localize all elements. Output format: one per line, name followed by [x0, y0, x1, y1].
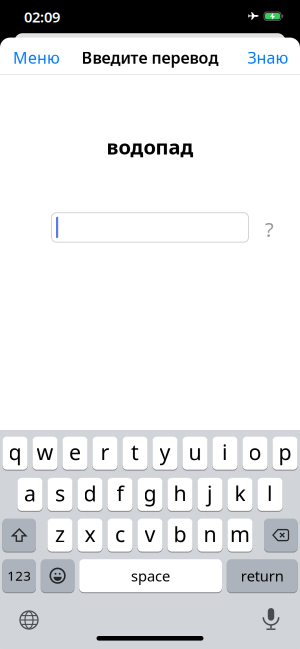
staticText: return: [241, 566, 284, 585]
button[interactable]: Next keyboard: [14, 605, 44, 635]
staticText: водопад: [106, 133, 193, 160]
button[interactable]: q: [2, 437, 28, 471]
staticText: a: [24, 479, 36, 507]
staticText: f: [116, 479, 123, 507]
button[interactable]: Emoji: [41, 559, 74, 593]
staticText: z: [55, 520, 65, 548]
staticText: Меню: [13, 47, 60, 68]
staticText: u: [188, 438, 201, 466]
button[interactable]: space: [79, 559, 222, 593]
button[interactable]: n: [197, 519, 223, 553]
staticText: space: [131, 566, 170, 585]
button[interactable]: a: [17, 478, 43, 512]
button[interactable]: k: [227, 478, 253, 512]
button[interactable]: r: [92, 437, 118, 471]
button[interactable]: l: [257, 478, 283, 512]
staticText: j: [207, 479, 213, 507]
button[interactable]: u: [182, 437, 208, 471]
staticText: v: [144, 520, 155, 548]
staticText: n: [203, 520, 216, 548]
staticText: l: [267, 479, 273, 507]
staticText: o: [248, 438, 261, 466]
button[interactable]: Меню: [13, 47, 60, 68]
staticText: k: [234, 479, 245, 507]
staticText: 123: [7, 567, 31, 584]
button[interactable]: m: [227, 519, 253, 553]
button[interactable]: Dictate: [256, 604, 286, 634]
staticText: d: [83, 479, 96, 507]
button[interactable]: Shift: [2, 519, 36, 553]
staticText: y: [159, 438, 170, 466]
button[interactable]: Подсказка: [259, 219, 279, 239]
staticText: p: [278, 438, 291, 466]
staticText: 02:09: [24, 7, 60, 27]
button[interactable]: i: [212, 437, 238, 471]
button[interactable]: j: [197, 478, 223, 512]
button[interactable]: c: [107, 519, 133, 553]
button[interactable]: Return: [227, 559, 298, 593]
staticText: Знаю: [247, 47, 288, 68]
staticText: m: [230, 520, 250, 548]
button[interactable]: z: [47, 519, 73, 553]
button[interactable]: Знаю: [247, 47, 288, 68]
staticText: x: [84, 520, 95, 548]
staticText: r: [100, 438, 109, 466]
button[interactable]: y: [152, 437, 178, 471]
button[interactable]: Numbers: [2, 559, 36, 593]
staticText: t: [131, 438, 139, 466]
staticText: b: [173, 520, 186, 548]
button[interactable]: d: [77, 478, 103, 512]
staticText: w: [36, 438, 53, 466]
button[interactable]: o: [242, 437, 268, 471]
button[interactable]: g: [137, 478, 163, 512]
staticText: e: [69, 438, 81, 466]
button[interactable]: x: [77, 519, 103, 553]
button[interactable]: Перевод: [51, 213, 248, 242]
button[interactable]: s: [47, 478, 73, 512]
staticText: Введите перевод: [81, 47, 218, 68]
staticText: c: [115, 520, 125, 548]
staticText: q: [8, 438, 21, 466]
button[interactable]: p: [272, 437, 298, 471]
staticText: s: [55, 479, 65, 507]
button[interactable]: b: [167, 519, 193, 553]
button[interactable]: f: [107, 478, 133, 512]
button[interactable]: v: [137, 519, 163, 553]
button[interactable]: Delete: [264, 519, 298, 553]
staticText: i: [222, 438, 228, 466]
button[interactable]: h: [167, 478, 193, 512]
staticText: ?: [265, 216, 274, 242]
staticText: g: [143, 479, 156, 507]
button[interactable]: w: [32, 437, 58, 471]
button[interactable]: e: [62, 437, 88, 471]
staticText: h: [173, 479, 186, 507]
button[interactable]: t: [122, 437, 148, 471]
